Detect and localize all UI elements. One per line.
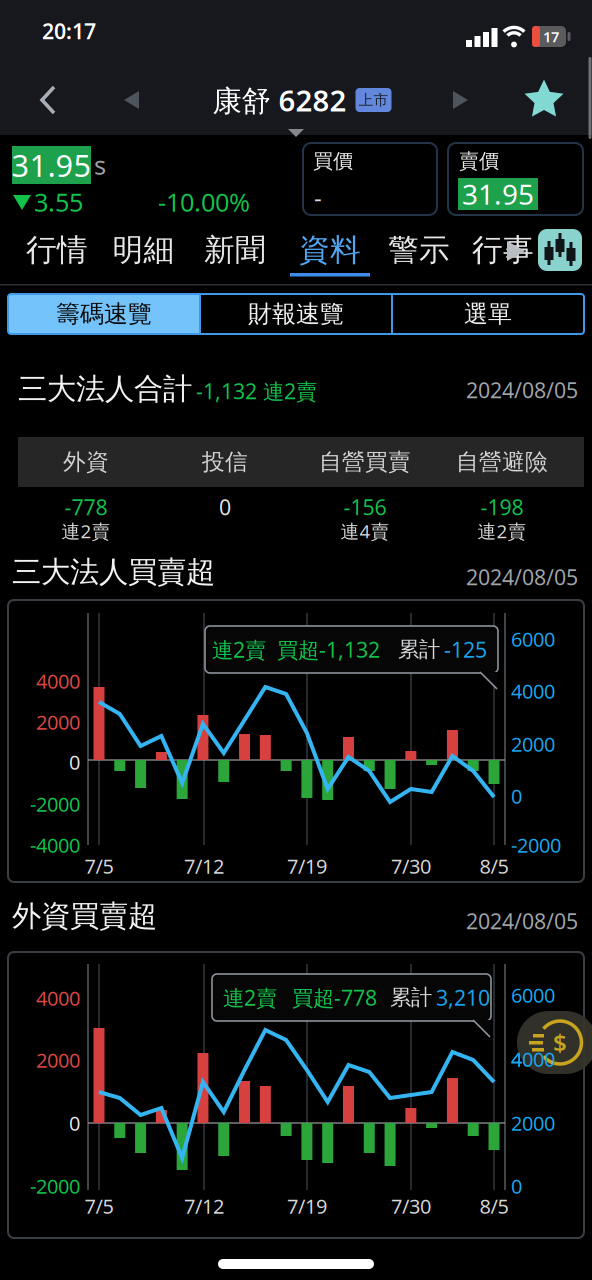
button[interactable]: Previous stock	[115, 84, 147, 116]
button[interactable]: 資料	[299, 231, 361, 269]
staticText: 6000	[511, 626, 555, 652]
staticText: 4000	[36, 668, 80, 694]
staticText: 3.55	[34, 185, 83, 219]
staticText: 31.95	[11, 145, 91, 185]
staticText: 籌碼速覽	[56, 299, 152, 329]
button[interactable]: Favorite	[522, 78, 566, 122]
staticText: -10.00%	[158, 185, 250, 219]
staticText: 8/5	[479, 1193, 508, 1219]
staticText: 三大法人買賣超	[12, 554, 215, 590]
staticText: 7/12	[184, 1193, 224, 1219]
staticText: 三大法人合計	[18, 371, 192, 407]
staticText: 賣價	[459, 149, 499, 173]
staticText: s	[94, 148, 106, 182]
staticText: 7/30	[391, 853, 431, 879]
button[interactable]: 明細	[112, 231, 174, 269]
staticText: 選單	[464, 299, 512, 329]
staticText: 2000	[511, 731, 555, 757]
staticText: 連4賣	[340, 519, 389, 543]
staticText: 連2賣	[477, 519, 526, 543]
staticText: 2000	[36, 1047, 80, 1073]
staticText: 0	[69, 1110, 80, 1136]
staticText: -125	[444, 635, 487, 664]
staticText: 自營避險	[456, 448, 548, 476]
staticText: 上市	[358, 91, 388, 109]
staticText: -778	[64, 493, 107, 521]
button[interactable]: 行情	[26, 231, 88, 269]
staticText: 累計	[390, 984, 432, 1011]
staticText: 行事	[472, 231, 534, 269]
staticText: 外資	[63, 448, 109, 476]
staticText: 累計	[398, 636, 440, 663]
button[interactable]: 財報速覽	[200, 294, 392, 334]
button[interactable]: 新聞	[204, 231, 266, 269]
staticText: 2000	[36, 709, 80, 735]
staticText: 0	[511, 1173, 522, 1199]
staticText: 財報速覽	[248, 299, 344, 329]
staticText: 20:17	[42, 17, 96, 45]
button[interactable]: 籌碼速覽	[8, 294, 200, 334]
staticText: 連2賣	[61, 519, 110, 543]
staticText: 2024/08/05	[466, 563, 578, 591]
staticText: 0	[511, 783, 522, 809]
staticText: 8/5	[479, 853, 508, 879]
staticText: 連2賣	[223, 983, 277, 1012]
staticText: -	[314, 181, 322, 213]
staticText: 0	[69, 749, 80, 775]
staticText: 康舒 6282	[212, 80, 346, 119]
button[interactable]: Chart settings	[538, 229, 582, 271]
staticText: 警示	[388, 231, 450, 269]
button[interactable]: 選單	[392, 294, 584, 334]
staticText: 外資買賣超	[12, 898, 157, 934]
staticText: 7/12	[184, 853, 224, 879]
button[interactable]: 警示	[388, 231, 450, 269]
button[interactable]: Next stock	[445, 84, 477, 116]
staticText: 7/5	[84, 853, 113, 879]
staticText: -198	[480, 493, 523, 521]
staticText: 2024/08/05	[466, 907, 578, 935]
staticText: 6000	[511, 982, 555, 1008]
staticText: -2000	[511, 832, 561, 858]
staticText: 買超-778	[292, 983, 377, 1012]
staticText: 自營買賣	[319, 448, 411, 476]
staticText: 7/5	[84, 1193, 113, 1219]
staticText: 0	[219, 493, 231, 521]
staticText: 7/19	[287, 853, 327, 879]
staticText: 投信	[202, 448, 248, 476]
staticText: 買價	[313, 149, 353, 173]
staticText: 17	[543, 27, 559, 46]
staticText: 資料	[299, 231, 361, 269]
staticText: 買超-1,132	[277, 635, 380, 664]
staticText: 4000	[511, 1046, 555, 1072]
staticText: 明細	[112, 231, 174, 269]
staticText: -2000	[30, 1173, 80, 1199]
button[interactable]: Rewards	[517, 1011, 592, 1074]
staticText: 7/30	[391, 1193, 431, 1219]
button[interactable]: Back	[28, 79, 70, 121]
staticText: 31.95	[462, 175, 534, 213]
staticText: 行情	[26, 231, 88, 269]
staticText: -156	[343, 493, 386, 521]
staticText: 新聞	[204, 231, 266, 269]
button[interactable]: 行事	[472, 231, 534, 269]
staticText: 2000	[511, 1110, 555, 1136]
staticText: 7/19	[287, 1193, 327, 1219]
staticText: 3,210	[436, 983, 490, 1012]
staticText: 4000	[511, 1046, 555, 1072]
staticText: 4000	[36, 985, 80, 1011]
staticText: -2000	[30, 791, 80, 817]
staticText: 連2賣	[212, 635, 266, 664]
staticText: -1,132 連2賣	[196, 377, 317, 405]
staticText: 4000	[511, 678, 555, 704]
staticText: -4000	[30, 832, 80, 858]
staticText: $	[553, 1027, 567, 1058]
staticText: 2024/08/05	[466, 376, 578, 404]
